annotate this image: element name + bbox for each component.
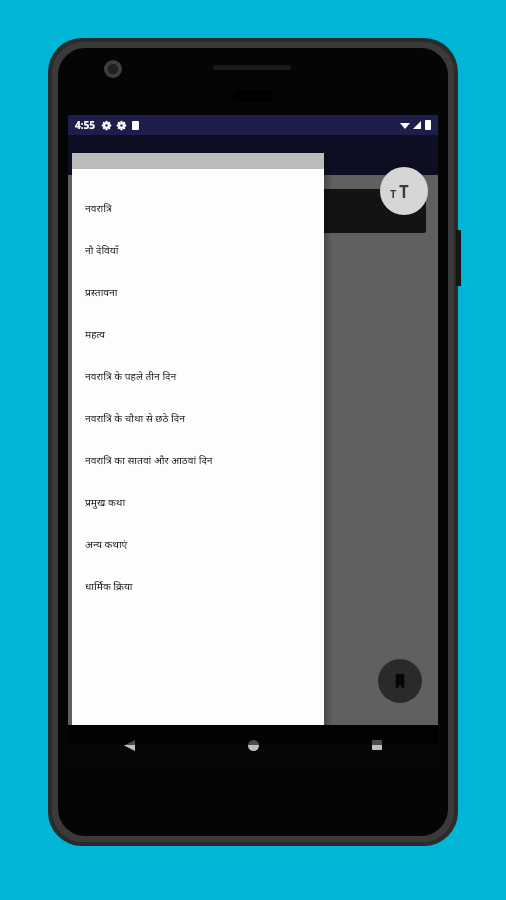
button[interactable]: नवरात्रि — [72, 187, 324, 229]
staticText: महागौरी इन्हें ही नवदुर्गा कहते हैं। इन — [80, 325, 196, 337]
button[interactable]: Text size — [380, 167, 428, 215]
staticText: नवरात्रि का सातवां और आठवां दिन — [85, 453, 213, 467]
staticText: त्यौहार है जिसे बड़े उत्साह के साथ मनाया — [80, 367, 210, 379]
button[interactable]: Home — [240, 732, 266, 758]
staticText: 4:55 — [75, 118, 95, 132]
staticText: प्रमुख कथा — [85, 495, 126, 509]
staticText: नवरात्रि के पहले तीन दिन — [85, 369, 177, 383]
staticText: नौ देवियाँ — [85, 243, 119, 257]
staticText: धार्मिक क्रिया — [85, 579, 133, 593]
button[interactable]: महत्व — [72, 313, 324, 355]
staticText: नवरात्रि — [85, 201, 112, 215]
button[interactable]: नवरात्रि के चौथा से छठे दिन — [72, 397, 324, 439]
button[interactable]: नौ देवियाँ — [72, 229, 324, 271]
staticText: नवरात्रि के चौथा से छठे दिन — [85, 411, 185, 425]
staticText: यह पर्व शक्ति की आराधना का केन्द्र है। न… — [80, 283, 251, 295]
button[interactable]: Back — [116, 732, 142, 758]
button[interactable]: नवरात्रि के पहले तीन दिन — [72, 355, 324, 397]
staticText: T — [390, 186, 397, 201]
button[interactable]: अन्य कथाएं — [72, 523, 324, 565]
staticText: T — [399, 180, 409, 203]
button[interactable]: Recent apps — [364, 732, 390, 758]
button[interactable]: Bookmark — [378, 659, 422, 703]
button[interactable]: प्रमुख कथा — [72, 481, 324, 523]
staticText: प्रस्तावना — [85, 285, 118, 299]
button[interactable]: प्रस्तावना — [72, 271, 324, 313]
staticText: अन्य कथाएं — [85, 537, 128, 551]
button[interactable]: नवरात्रि का सातवां और आठवां दिन — [72, 439, 324, 481]
staticText: महत्व — [85, 327, 105, 341]
button[interactable]: धार्मिक क्रिया — [72, 565, 324, 607]
